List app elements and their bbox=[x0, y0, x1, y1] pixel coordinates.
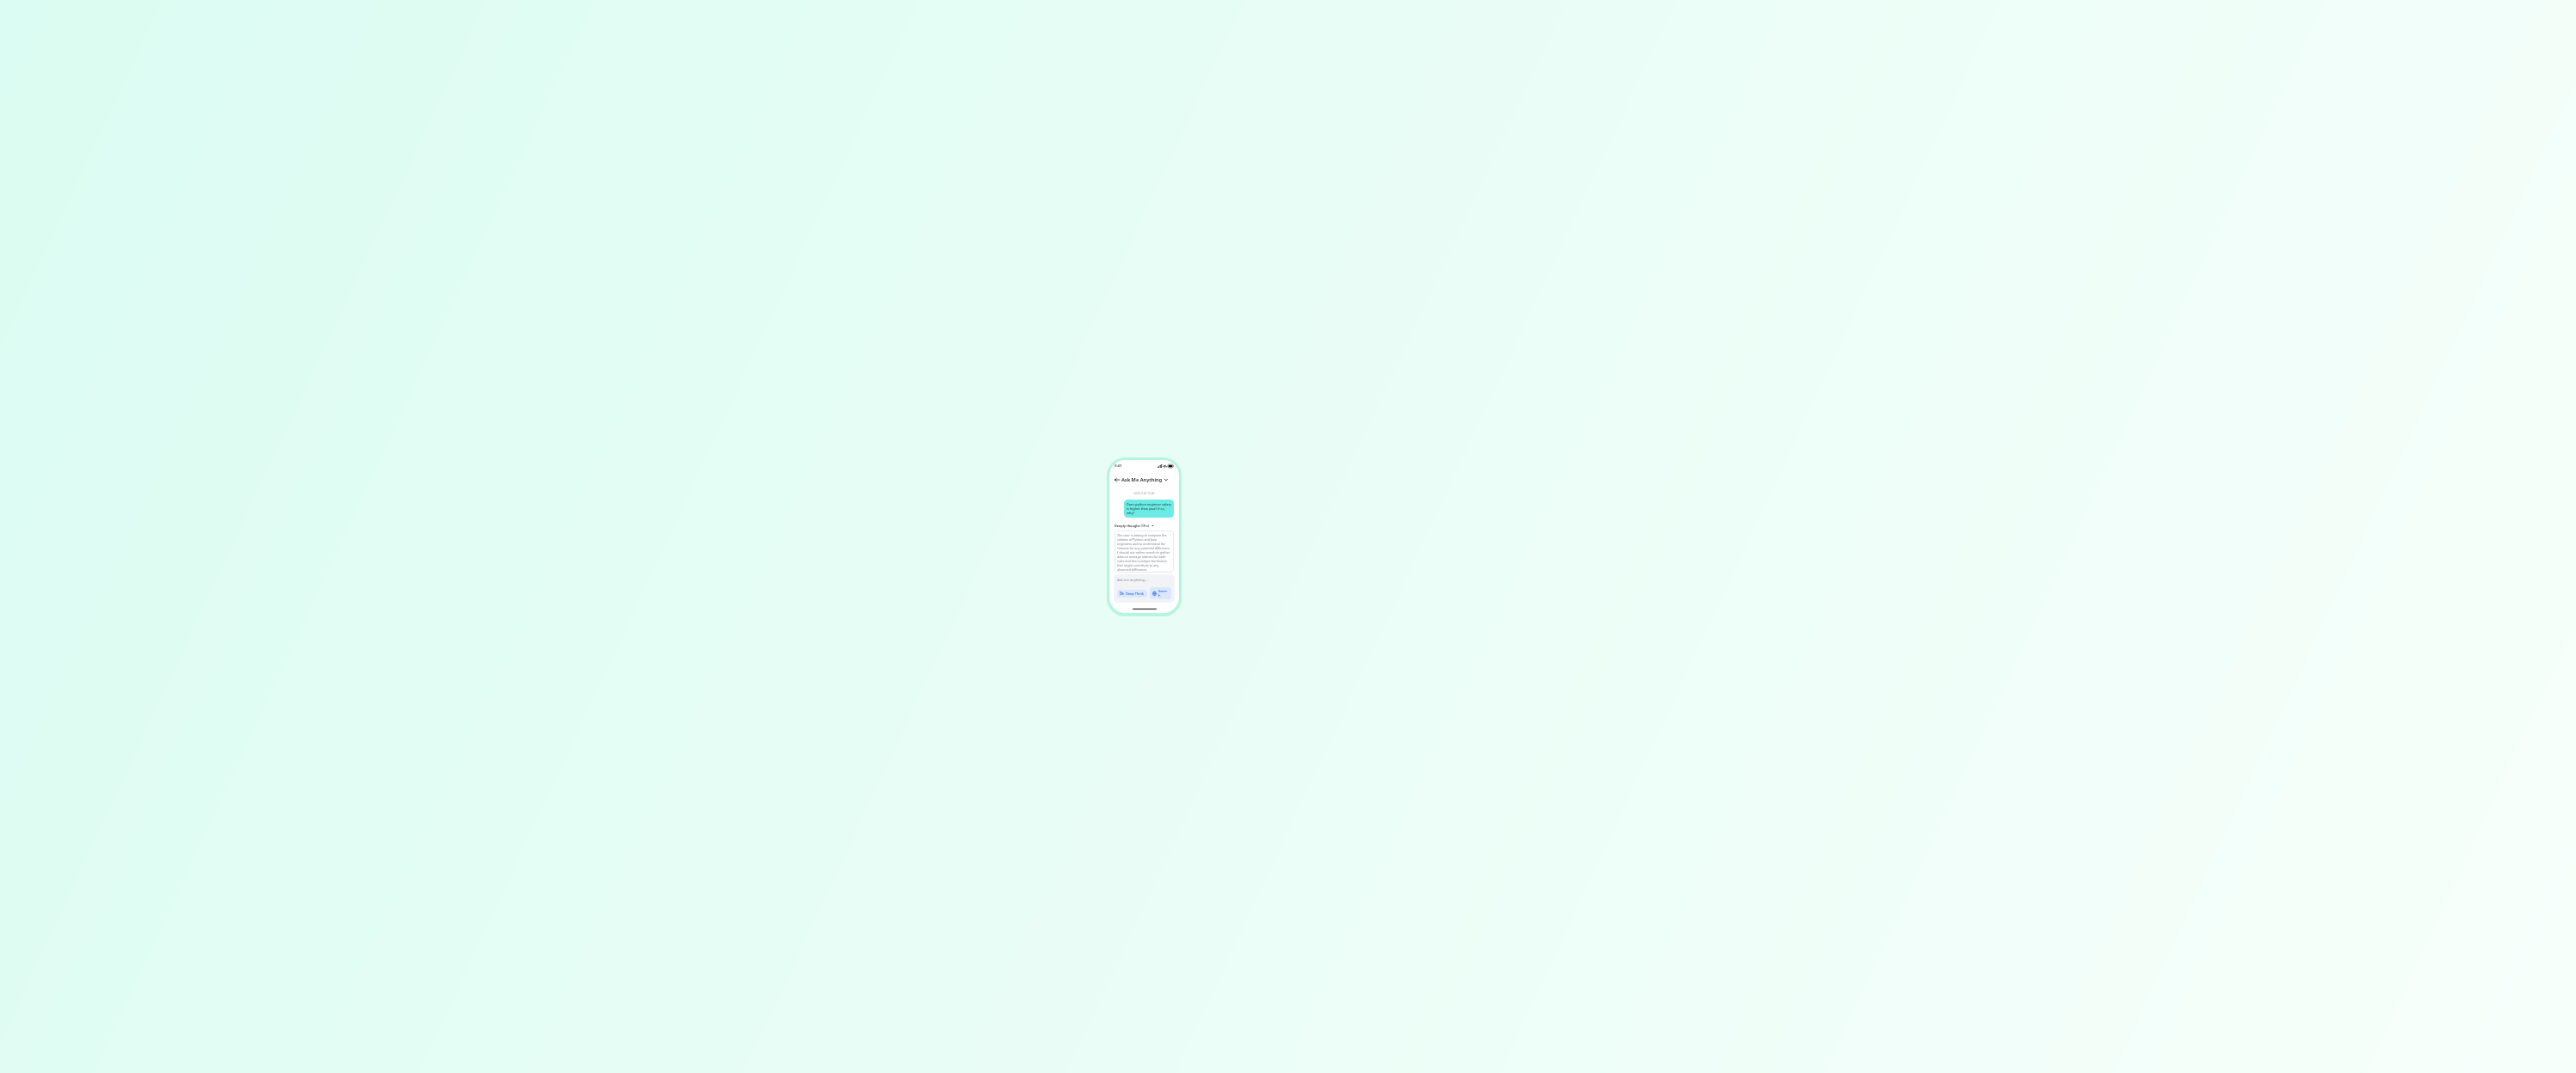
button[interactable]: Deeply thought (19 s) bbox=[1115, 524, 1154, 528]
button[interactable]: Search bbox=[1150, 587, 1171, 599]
staticText: 2025-2-28 12:00 bbox=[1109, 492, 1179, 495]
button[interactable]: Ask Me Anything bbox=[1121, 476, 1168, 483]
staticText: Search bbox=[1158, 589, 1169, 597]
button[interactable]: Back bbox=[1113, 476, 1121, 483]
button[interactable]: Ask me anything... bbox=[1117, 578, 1171, 583]
staticText: Deeply thought (19 s) bbox=[1115, 524, 1150, 528]
button[interactable]: Does python engineer salary is higher th… bbox=[1124, 500, 1174, 518]
button[interactable]: Deep Think bbox=[1117, 590, 1147, 597]
staticText: Ask Me Anything bbox=[1121, 476, 1163, 483]
staticText: Does python engineer salary is higher th… bbox=[1127, 502, 1171, 515]
staticText: Deep Think bbox=[1126, 591, 1145, 596]
staticText: 9:41 bbox=[1115, 464, 1122, 469]
staticText: The user is asking to compare the salari… bbox=[1117, 533, 1171, 573]
